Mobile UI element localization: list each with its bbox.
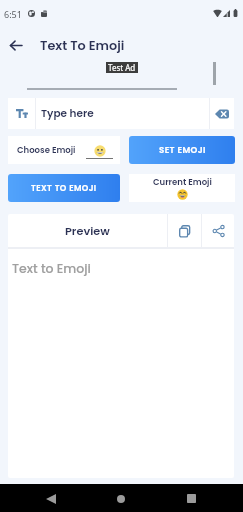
button[interactable]: Clear text — [210, 98, 234, 129]
staticText: Choose Emoji — [17, 144, 76, 156]
staticText: Test Ad — [108, 62, 136, 73]
button[interactable]: Share — [202, 214, 234, 247]
button[interactable]: TEXT TO EMOJI — [8, 174, 120, 202]
button[interactable]: Back — [38, 486, 63, 511]
button[interactable]: SET EMOJI — [129, 136, 235, 164]
button[interactable]: Preview — [8, 214, 167, 247]
button[interactable]: Home — [108, 486, 133, 511]
staticText: Text To Emoji — [40, 37, 125, 55]
button[interactable]: Choose Emoji — [8, 136, 120, 164]
button[interactable]: Copy — [168, 214, 201, 247]
staticText: Type here — [41, 106, 94, 121]
staticText: TEXT TO EMOJI — [31, 182, 97, 194]
staticText: 6:51 — [4, 8, 22, 20]
button[interactable]: Current Emoji — [129, 174, 235, 202]
staticText: SET EMOJI — [159, 144, 206, 156]
button[interactable]: Font style — [8, 98, 35, 129]
staticText: Current Emoji — [153, 176, 212, 188]
staticText: Preview — [65, 223, 110, 239]
button[interactable]: Recent apps — [179, 486, 204, 511]
staticText: Text to Emoji — [12, 260, 91, 277]
button[interactable]: Back — [2, 31, 30, 59]
